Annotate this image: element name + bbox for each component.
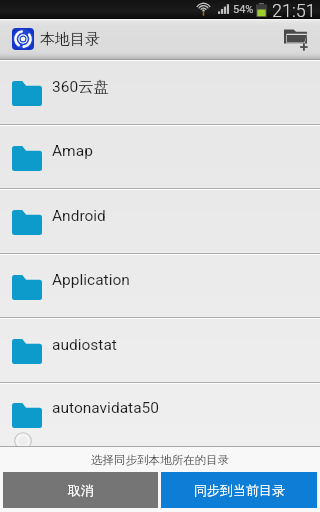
button[interactable]: Amap bbox=[0, 126, 320, 190]
button[interactable]: autonavidata50 bbox=[0, 384, 320, 446]
button[interactable]: 取消 bbox=[3, 472, 158, 508]
staticText: Android bbox=[52, 207, 106, 225]
staticText: 21:51 bbox=[272, 0, 316, 19]
staticText: 选择同步到本地所在的目录 bbox=[91, 453, 229, 467]
button[interactable]: New folder bbox=[272, 19, 320, 59]
staticText: 同步到当前目录 bbox=[194, 482, 285, 498]
button[interactable]: audiostat bbox=[0, 319, 320, 384]
staticText: 54% bbox=[233, 3, 254, 16]
staticText: audiostat bbox=[52, 336, 117, 354]
button[interactable]: 360云盘 bbox=[0, 61, 320, 126]
button[interactable]: App logo bbox=[12, 28, 34, 50]
staticText: 取消 bbox=[68, 482, 94, 498]
staticText: Amap bbox=[52, 142, 93, 160]
button[interactable]: Android bbox=[0, 190, 320, 255]
staticText: 本地目录 bbox=[40, 30, 100, 49]
staticText: Application bbox=[52, 271, 130, 289]
button[interactable]: Application bbox=[0, 255, 320, 319]
staticText: autonavidata50 bbox=[52, 399, 159, 417]
button[interactable]: 同步到当前目录 bbox=[161, 472, 317, 508]
staticText: 360云盘 bbox=[52, 77, 110, 97]
